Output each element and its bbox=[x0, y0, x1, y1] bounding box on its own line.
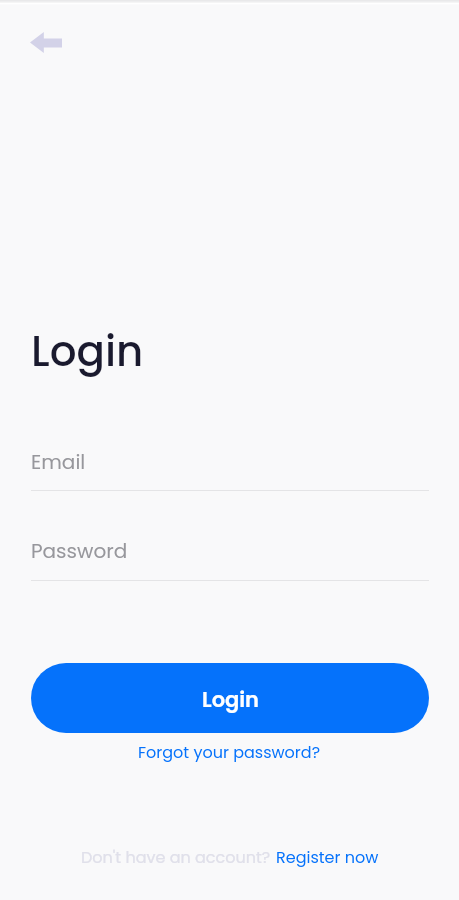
staticText: Login bbox=[31, 322, 144, 381]
staticText: Email bbox=[31, 448, 86, 476]
staticText: Register now bbox=[276, 846, 379, 868]
staticText: Forgot your password? bbox=[138, 741, 321, 763]
staticText: Password bbox=[31, 537, 128, 565]
button[interactable]: Register now bbox=[276, 846, 379, 868]
button[interactable]: Forgot your password? bbox=[130, 738, 329, 766]
staticText: Login bbox=[202, 685, 259, 714]
button[interactable]: Back bbox=[22, 18, 70, 66]
button[interactable]: Login bbox=[31, 663, 429, 733]
staticText: Don't have an account? bbox=[81, 846, 271, 868]
